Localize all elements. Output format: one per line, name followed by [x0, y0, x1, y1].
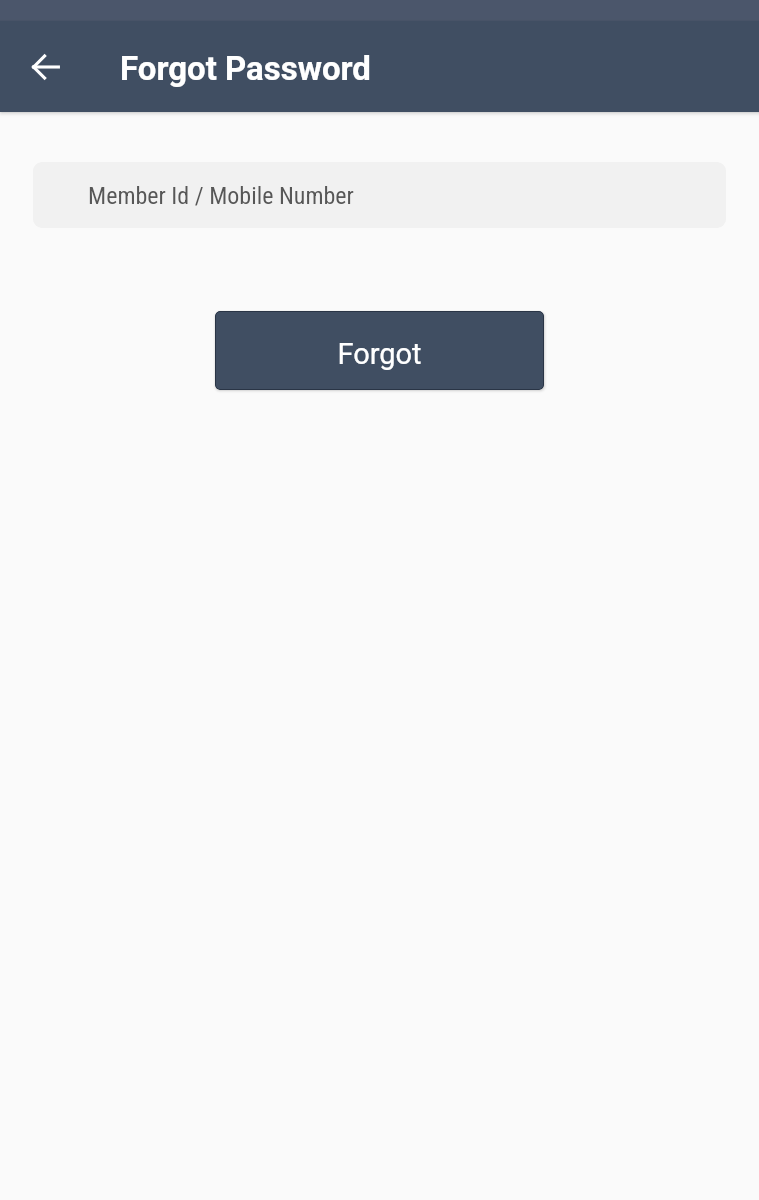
button[interactable]: Forgot	[215, 311, 544, 390]
button[interactable]: Back	[18, 39, 74, 95]
button[interactable]: Member Id / Mobile Number	[33, 162, 726, 228]
staticText: Member Id / Mobile Number	[88, 182, 354, 210]
staticText: Forgot	[337, 337, 422, 371]
staticText: Forgot Password	[120, 49, 371, 88]
